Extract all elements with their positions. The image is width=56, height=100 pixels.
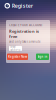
staticText: Email address — [10, 45, 20, 52]
button[interactable]: Sign in — [36, 53, 49, 60]
button[interactable]: Register Now — [7, 53, 28, 60]
button[interactable]: Register — [0, 0, 56, 11]
staticText: and only takes a minute — [9, 40, 41, 43]
staticText: Sign in — [37, 55, 47, 58]
staticText: Register — [12, 2, 33, 9]
staticText: Registration is free — [9, 28, 39, 39]
staticText: Register Now — [8, 55, 27, 58]
staticText: CREATE YOUR ACCOUNT — [9, 23, 43, 27]
